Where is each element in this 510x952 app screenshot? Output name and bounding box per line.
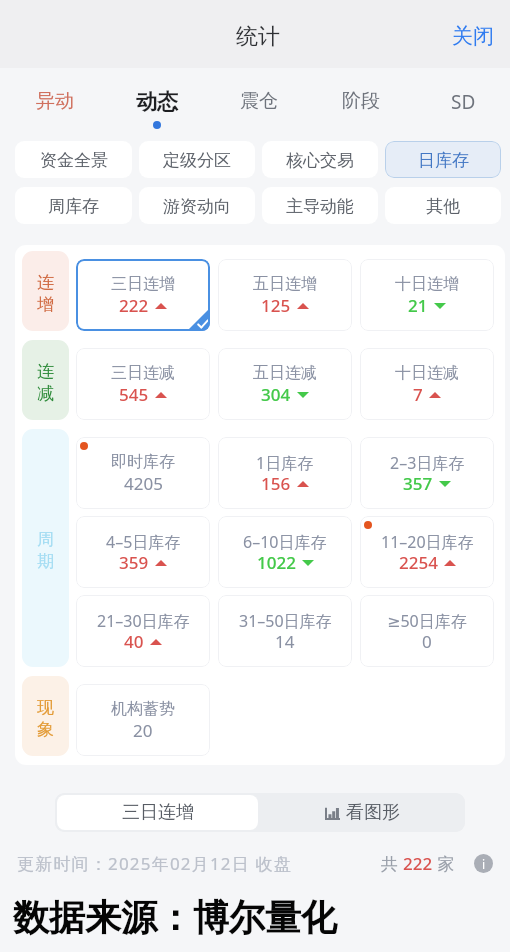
button[interactable]: 4–5日库存 (76, 516, 210, 588)
staticText: 14 (275, 630, 295, 653)
button[interactable]: 机构蓄势 (76, 684, 210, 756)
staticText: 周 (37, 529, 54, 550)
button[interactable]: 游资动向 (139, 187, 255, 224)
button[interactable]: 三日连增 (76, 259, 210, 331)
staticText: 156 (261, 472, 291, 495)
button[interactable]: 其他 (385, 187, 501, 224)
staticText: 象 (37, 719, 54, 740)
staticText: 304 (261, 383, 291, 406)
button[interactable]: 震仓 (208, 68, 310, 136)
staticText: 三日连减 (111, 363, 175, 383)
button[interactable]: 动态 (106, 68, 208, 136)
staticText: i (482, 856, 486, 872)
staticText: 现 (37, 697, 54, 718)
staticText: 十日连减 (395, 363, 459, 383)
staticText: 动态 (136, 89, 178, 115)
staticText: 40 (124, 630, 144, 653)
staticText: 异动 (36, 89, 74, 113)
button[interactable]: 21–30日库存 (76, 595, 210, 667)
staticText: 21 (408, 294, 428, 317)
staticText: 资金全景 (40, 150, 108, 171)
staticText: 21–30日库存 (97, 610, 190, 632)
button[interactable]: SD (412, 68, 510, 136)
button[interactable]: 十日连减 (360, 348, 494, 420)
staticText: 主导动能 (286, 196, 354, 217)
button[interactable]: 资金全景 (15, 141, 132, 178)
staticText: 31–50日库存 (239, 610, 332, 632)
staticText: 定级分区 (163, 150, 231, 171)
staticText: 359 (119, 551, 149, 574)
button[interactable]: 五日连增 (218, 259, 352, 331)
staticText: 即时库存 (111, 452, 175, 472)
staticText: 五日连减 (253, 363, 317, 383)
button[interactable]: 11–20日库存 (360, 516, 494, 588)
button[interactable]: 连 (22, 340, 69, 420)
staticText: 数据来源：博尔量化 (13, 895, 337, 940)
button[interactable]: 关闭 (434, 11, 510, 61)
staticText: 4205 (124, 472, 163, 495)
button[interactable]: 周 (22, 429, 69, 667)
staticText: SD (451, 89, 476, 115)
staticText: 4–5日库存 (106, 531, 181, 553)
staticText: 连 (37, 361, 54, 382)
staticText: 五日连增 (253, 274, 317, 294)
button[interactable]: 现 (22, 676, 69, 756)
button[interactable]: 即时库存 (76, 437, 210, 509)
staticText: 222 (119, 294, 149, 317)
staticText: 三日连增 (122, 801, 194, 824)
button[interactable]: Info (474, 854, 493, 873)
button[interactable]: 周库存 (15, 187, 132, 224)
staticText: 0 (422, 630, 432, 653)
staticText: 日库存 (418, 150, 469, 171)
button[interactable]: 2–3日库存 (360, 437, 494, 509)
staticText: 125 (261, 294, 291, 317)
staticText: 2254 (399, 551, 438, 574)
staticText: 357 (403, 472, 433, 495)
staticText: 20 (133, 719, 153, 742)
staticText: 更新时间：2025年02月12日 收盘 (17, 852, 293, 875)
staticText: 其他 (426, 196, 460, 217)
staticText: 增 (37, 294, 54, 315)
button[interactable]: 十日连增 (360, 259, 494, 331)
button[interactable]: 异动 (4, 68, 106, 136)
staticText: 6–10日库存 (243, 531, 327, 553)
button[interactable]: 主导动能 (262, 187, 378, 224)
button[interactable]: 核心交易 (262, 141, 378, 178)
button[interactable]: 6–10日库存 (218, 516, 352, 588)
staticText: 期 (37, 551, 54, 572)
staticText: 减 (37, 383, 54, 404)
staticText: 家 (433, 852, 455, 875)
button[interactable]: 三日连增 (57, 795, 258, 830)
staticText: 2–3日库存 (390, 452, 465, 474)
staticText: 1022 (257, 551, 296, 574)
staticText: 游资动向 (163, 196, 231, 217)
staticText: 阶段 (342, 89, 380, 113)
button[interactable]: 定级分区 (139, 141, 255, 178)
staticText: 震仓 (240, 89, 278, 113)
staticText: 11–20日库存 (381, 531, 474, 553)
staticText: 三日连增 (111, 274, 175, 294)
staticText: 222 (403, 852, 433, 875)
staticText: 关闭 (452, 23, 494, 49)
button[interactable]: 看图形 (260, 793, 465, 832)
staticText: 十日连增 (395, 274, 459, 294)
staticText: 机构蓄势 (111, 699, 175, 719)
staticText: 7 (413, 383, 423, 406)
button[interactable]: ≥50日库存 (360, 595, 494, 667)
button[interactable]: 五日连减 (218, 348, 352, 420)
button[interactable]: 1日库存 (218, 437, 352, 509)
button[interactable]: 31–50日库存 (218, 595, 352, 667)
staticText: 545 (119, 383, 149, 406)
staticText: 统计 (236, 23, 280, 51)
staticText: 核心交易 (286, 150, 354, 171)
staticText: 周库存 (48, 196, 99, 217)
button[interactable]: 日库存 (385, 141, 501, 178)
button[interactable]: 连 (22, 251, 69, 331)
button[interactable]: 三日连减 (76, 348, 210, 420)
staticText: 看图形 (346, 801, 400, 824)
button[interactable]: 阶段 (310, 68, 412, 136)
staticText: 共 (381, 852, 403, 875)
staticText: ≥50日库存 (387, 610, 467, 632)
staticText: 1日库存 (256, 452, 314, 474)
staticText: 连 (37, 272, 54, 293)
